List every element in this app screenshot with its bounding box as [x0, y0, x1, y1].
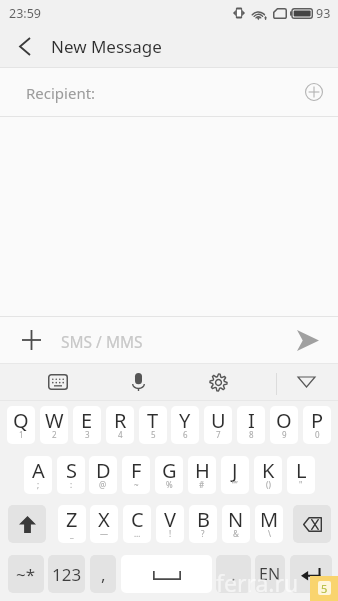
button[interactable]: G	[155, 456, 183, 494]
staticText: Q	[13, 407, 29, 434]
button[interactable]: .	[216, 555, 251, 593]
button[interactable]: A	[24, 456, 52, 494]
staticText: D	[96, 457, 111, 484]
staticText: K	[262, 457, 275, 484]
button[interactable]: Keyboard layout	[37, 364, 78, 400]
staticText: …	[134, 528, 141, 539]
staticText: 9	[282, 429, 287, 440]
button[interactable]: O	[270, 406, 298, 444]
button[interactable]: Hide keyboard	[288, 364, 324, 400]
staticText: ferra.ru	[216, 567, 299, 598]
staticText: 93	[316, 5, 331, 22]
button[interactable]: Back	[2, 26, 46, 67]
button[interactable]: U	[204, 406, 232, 444]
staticText: \	[268, 528, 271, 539]
staticText: 8	[249, 429, 254, 440]
staticText: P	[311, 407, 324, 434]
staticText: ''	[299, 479, 303, 490]
button[interactable]: C	[123, 505, 151, 543]
button[interactable]: T	[139, 406, 167, 444]
staticText: H	[195, 457, 210, 484]
button[interactable]: Send	[286, 318, 330, 362]
button[interactable]: Voice input	[118, 364, 158, 400]
staticText: T	[147, 407, 159, 434]
button[interactable]: L	[287, 456, 315, 494]
staticText: &	[233, 528, 239, 539]
staticText: 3	[85, 429, 90, 440]
staticText: #	[199, 479, 205, 490]
staticText: ;	[37, 479, 40, 490]
button[interactable]: K	[254, 456, 282, 494]
staticText: L	[296, 457, 307, 484]
staticText: J	[232, 457, 238, 484]
button[interactable]: F	[122, 456, 150, 494]
staticText: :	[70, 479, 73, 490]
staticText: @	[99, 479, 107, 490]
button[interactable]: S	[57, 456, 85, 494]
button[interactable]: Settings	[198, 364, 238, 400]
staticText: 0	[315, 429, 320, 440]
staticText: V	[164, 506, 176, 533]
staticText: X	[98, 506, 110, 533]
staticText: SMS / MMS	[61, 331, 143, 352]
button[interactable]: Enter	[290, 555, 332, 593]
staticText: 5	[151, 429, 156, 440]
staticText: 5	[321, 581, 328, 595]
button[interactable]: Backspace	[293, 505, 331, 543]
staticText: 2	[52, 429, 57, 440]
staticText: ~*	[16, 563, 36, 586]
button[interactable]: Z	[58, 505, 86, 543]
staticText: O	[276, 407, 292, 434]
button[interactable]: I	[237, 406, 265, 444]
button[interactable]: Recipient:	[0, 68, 338, 116]
staticText: 23:59	[9, 5, 41, 22]
staticText: %	[166, 479, 173, 490]
staticText: G	[162, 457, 177, 484]
button[interactable]: Space	[121, 555, 212, 593]
staticText: E	[81, 407, 93, 434]
staticText: U	[211, 407, 226, 434]
button[interactable]: W	[40, 406, 68, 444]
staticText: ?	[201, 528, 205, 539]
button[interactable]: D	[89, 456, 117, 494]
staticText: New Message	[51, 35, 162, 58]
staticText: !	[169, 528, 172, 539]
staticText: B	[197, 506, 210, 533]
staticText: F	[131, 457, 142, 484]
staticText: 123	[52, 563, 82, 586]
button[interactable]: H	[188, 456, 216, 494]
button[interactable]: M	[255, 505, 283, 543]
staticText: ()	[266, 479, 271, 490]
staticText: .	[231, 563, 236, 586]
staticText: ~	[134, 479, 139, 490]
button[interactable]: X	[90, 505, 118, 543]
staticText: W	[45, 407, 64, 434]
staticText: R	[114, 407, 127, 434]
button[interactable]: Attach	[9, 318, 53, 362]
button[interactable]: V	[156, 505, 184, 543]
staticText: C	[131, 506, 144, 533]
button[interactable]: J	[221, 456, 249, 494]
button[interactable]: ,	[90, 555, 116, 593]
button[interactable]: Add recipient	[296, 74, 332, 110]
button[interactable]: EN	[255, 555, 285, 593]
staticText: N	[228, 506, 244, 533]
button[interactable]: ~*	[8, 555, 44, 593]
staticText: EN	[259, 563, 281, 585]
button[interactable]: P	[303, 406, 331, 444]
button[interactable]: 123	[48, 555, 85, 593]
staticText: —	[100, 528, 108, 539]
button[interactable]: N	[222, 505, 250, 543]
button[interactable]: Y	[171, 406, 199, 444]
button[interactable]: R	[106, 406, 134, 444]
staticText: Z	[66, 506, 78, 533]
staticText: Y	[179, 407, 191, 434]
button[interactable]: E	[73, 406, 101, 444]
staticText: I	[248, 407, 255, 434]
staticText: 4	[118, 429, 123, 440]
button[interactable]: Shift	[8, 505, 46, 543]
button[interactable]: Q	[7, 406, 35, 444]
staticText: M	[260, 506, 279, 533]
staticText: _	[70, 528, 74, 539]
button[interactable]: B	[189, 505, 217, 543]
